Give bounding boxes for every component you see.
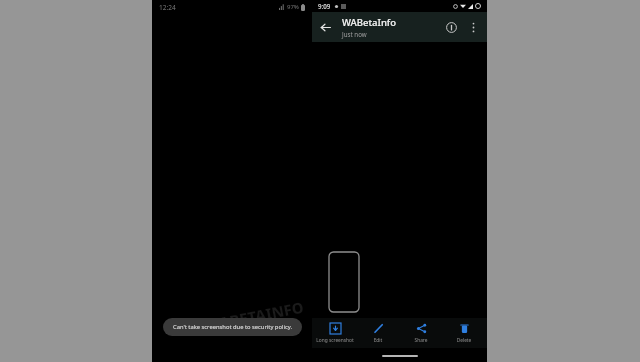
button[interactable]: Share bbox=[401, 321, 441, 346]
button[interactable]: Long screenshot bbox=[315, 321, 355, 346]
staticText: Edit bbox=[358, 337, 398, 344]
staticText: Share bbox=[401, 337, 441, 344]
staticText: WABetaInfo bbox=[342, 16, 397, 29]
staticText: Long screenshot bbox=[315, 337, 355, 344]
button[interactable]: More options bbox=[463, 17, 483, 37]
button[interactable]: Back bbox=[312, 14, 338, 40]
staticText: WABETAINFO bbox=[203, 296, 306, 335]
staticText: Delete bbox=[444, 337, 484, 344]
staticText: 12:24 bbox=[159, 3, 176, 12]
button[interactable]: Edit bbox=[358, 321, 398, 346]
button[interactable]: Info bbox=[439, 15, 463, 39]
staticText: Can't take screenshot due to security po… bbox=[173, 323, 292, 331]
staticText: 9:09 bbox=[318, 2, 331, 10]
button[interactable]: Screenshot preview bbox=[329, 252, 359, 312]
staticText: Just now bbox=[342, 30, 367, 38]
button[interactable]: Delete bbox=[444, 321, 484, 346]
staticText: 97% bbox=[287, 3, 299, 11]
